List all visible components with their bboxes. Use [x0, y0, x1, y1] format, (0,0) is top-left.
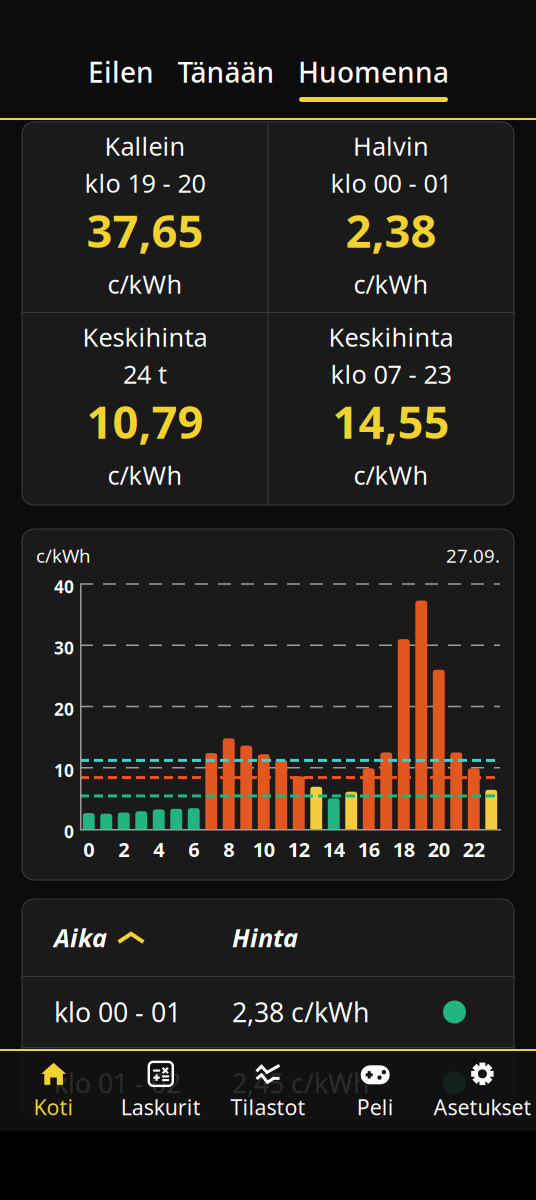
staticText: Koti	[34, 1093, 74, 1121]
button[interactable]: Tänään	[163, 50, 289, 94]
staticText: 20	[428, 836, 450, 863]
button[interactable]: Huomenna	[288, 50, 459, 102]
button[interactable]: Laskurit	[107, 1053, 214, 1129]
staticText: 40	[54, 575, 74, 598]
staticText: 6	[188, 836, 199, 863]
staticText: 2	[118, 836, 129, 863]
staticText: Eilen	[88, 53, 154, 91]
staticText: klo 07 - 23	[330, 357, 451, 391]
staticText: 24 t	[123, 357, 167, 391]
staticText: 0	[64, 820, 74, 843]
staticText: klo 01 - 02	[54, 1065, 181, 1101]
staticText: 12	[288, 836, 310, 863]
staticText: Peli	[357, 1093, 394, 1121]
staticText: c/kWh	[353, 267, 428, 301]
staticText: Laskurit	[121, 1093, 201, 1121]
staticText: klo 00 - 01	[54, 994, 181, 1030]
staticText: 10	[54, 759, 74, 782]
button[interactable]: klo 01 - 02	[22, 1048, 514, 1118]
staticText: Aika	[54, 921, 107, 954]
staticText: 4	[153, 836, 164, 863]
button[interactable]: Koti	[0, 1053, 107, 1129]
staticText: Kallein	[104, 129, 185, 163]
button[interactable]: Aika	[22, 899, 514, 976]
staticText: c/kWh	[107, 267, 182, 301]
button[interactable]: Tilastot	[214, 1053, 322, 1129]
staticText: c/kWh	[107, 458, 182, 492]
staticText: 14,55	[332, 391, 449, 451]
staticText: c/kWh	[36, 543, 91, 568]
button[interactable]: klo 00 - 01	[22, 977, 514, 1047]
staticText: Huomenna	[298, 53, 449, 91]
button[interactable]: Asetukset	[429, 1053, 536, 1129]
staticText: 30	[54, 636, 74, 659]
staticText: Keskihinta	[82, 320, 207, 354]
staticText: 20	[54, 697, 74, 720]
staticText: c/kWh	[353, 458, 428, 492]
staticText: 2,45 c/kWh	[232, 1065, 369, 1101]
staticText: Hinta	[232, 921, 298, 954]
staticText: 0	[83, 836, 94, 863]
staticText: Keskihinta	[328, 320, 453, 354]
staticText: 8	[223, 836, 234, 863]
staticText: Halvin	[353, 129, 429, 163]
staticText: 2,38	[345, 200, 436, 260]
staticText: Tilastot	[230, 1093, 305, 1121]
staticText: 22	[463, 836, 485, 863]
staticText: klo 00 - 01	[330, 166, 451, 200]
staticText: klo 19 - 20	[84, 166, 205, 200]
staticText: 2,38 c/kWh	[232, 994, 369, 1030]
staticText: 16	[358, 836, 380, 863]
staticText: Tänään	[177, 53, 274, 91]
staticText: 18	[393, 836, 415, 863]
staticText: Asetukset	[433, 1093, 531, 1121]
staticText: 10,79	[86, 391, 203, 451]
button[interactable]: Peli	[322, 1053, 429, 1129]
staticText: 37,65	[86, 200, 203, 260]
button[interactable]: Eilen	[77, 50, 165, 94]
staticText: 14	[323, 836, 345, 863]
staticText: 10	[253, 836, 275, 863]
staticText: 27.09.	[446, 543, 500, 568]
